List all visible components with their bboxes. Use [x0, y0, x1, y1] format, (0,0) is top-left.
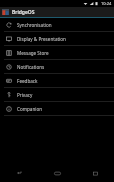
staticText: 10:24	[101, 1, 112, 6]
button[interactable]: Privacy	[0, 88, 114, 101]
staticText: Message Store	[17, 50, 49, 56]
button[interactable]: Companion	[0, 102, 114, 115]
staticText: BridgeOS	[12, 9, 35, 16]
button[interactable]: App icon	[0, 7, 114, 17]
staticText: Notifications	[17, 64, 45, 70]
button[interactable]: Home	[38, 164, 76, 182]
button[interactable]: Message Store	[0, 46, 114, 59]
staticText: Feedback	[17, 78, 38, 84]
button[interactable]: Notifications	[0, 60, 114, 73]
button[interactable]: Back	[0, 164, 38, 182]
button[interactable]: Feedback	[0, 74, 114, 87]
staticText: Display & Presentation	[17, 36, 66, 42]
button[interactable]: Synchronisation	[0, 18, 114, 31]
staticText: Companion	[17, 106, 43, 112]
staticText: Synchronisation	[17, 22, 52, 28]
button[interactable]: Display & Presentation	[0, 32, 114, 45]
staticText: Privacy	[17, 92, 33, 98]
button[interactable]: Recent apps	[76, 164, 114, 182]
other: App icon	[2, 9, 9, 16]
